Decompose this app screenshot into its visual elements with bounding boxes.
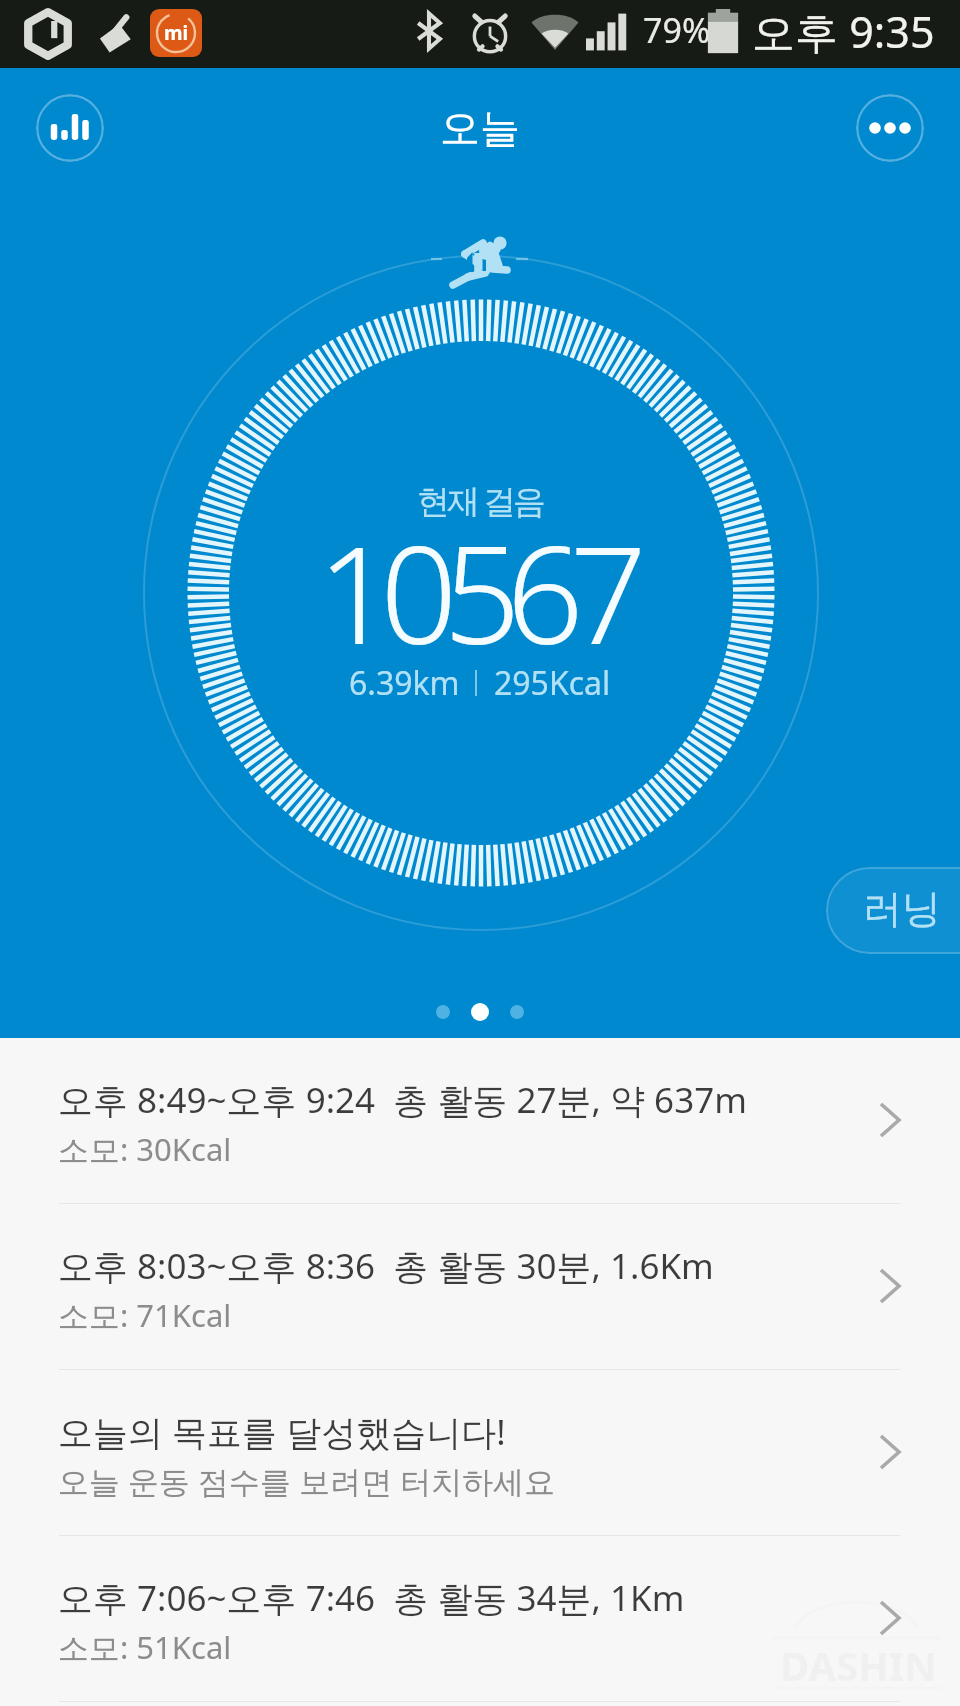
staticText: 6.39km [349, 661, 460, 705]
button[interactable]: 오후 8:03~오후 8:36 총 활동 30분, 1.6Km [0, 1204, 960, 1370]
staticText: 오늘 [0, 103, 960, 153]
staticText: 현재 걸음 [0, 478, 960, 523]
staticText: 오늘의 목표를 달성했습니다! [58, 1408, 506, 1456]
staticText: 소모: 71Kcal [58, 1294, 232, 1336]
button[interactable]: 오늘의 목표를 달성했습니다! [0, 1370, 960, 1536]
staticText: 오후 9:35 [752, 2, 935, 61]
staticText: 오늘 운동 점수를 보려면 터치하세요 [58, 1460, 556, 1502]
button[interactable]: 오후 7:06~오후 7:46 총 활동 34분, 1Km [0, 1536, 960, 1702]
staticText: 러닝 [863, 884, 941, 933]
staticText: 79% [643, 7, 711, 53]
button[interactable]: More options [856, 94, 924, 162]
staticText: 소모: 30Kcal [58, 1128, 232, 1170]
staticText: 오후 7:06~오후 7:46 총 활동 34분, 1Km [58, 1574, 685, 1622]
staticText: 295Kcal [494, 661, 611, 705]
staticText: 오후 8:49~오후 9:24 총 활동 27분, 약 637m [58, 1076, 747, 1124]
button[interactable]: 오후 8:49~오후 9:24 총 활동 27분, 약 637m [0, 1038, 960, 1204]
staticText: 소모: 51Kcal [58, 1626, 232, 1668]
staticText: 10567 [0, 500, 955, 684]
staticText: mi [164, 20, 189, 46]
button[interactable]: Statistics [36, 94, 104, 162]
staticText: 오후 8:03~오후 8:36 총 활동 30분, 1.6Km [58, 1242, 714, 1290]
button[interactable]: 러닝 [826, 867, 960, 954]
